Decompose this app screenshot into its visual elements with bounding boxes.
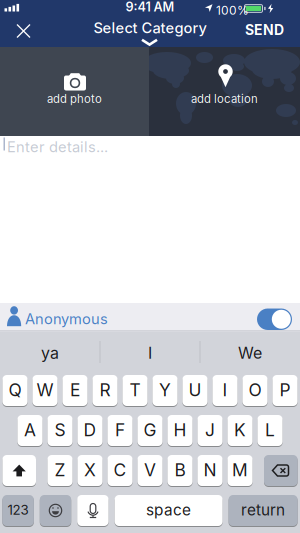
- staticText: add location: [191, 92, 258, 106]
- staticText: K: [234, 419, 246, 440]
- staticText: SEND: [245, 21, 284, 38]
- staticText: 100%: [216, 3, 249, 17]
- staticText: Enter details...: [7, 138, 108, 156]
- staticText: W: [36, 379, 53, 400]
- staticText: C: [113, 459, 126, 480]
- staticText: Q: [8, 379, 21, 400]
- staticText: Select Category: [93, 19, 206, 37]
- staticText: Z: [54, 459, 65, 480]
- staticText: return: [241, 501, 285, 519]
- staticText: D: [83, 419, 96, 440]
- staticText: add photo: [47, 92, 102, 106]
- staticText: T: [129, 379, 140, 400]
- staticText: I: [148, 343, 152, 363]
- staticText: B: [174, 459, 185, 480]
- staticText: space: [146, 501, 191, 519]
- staticText: I: [222, 379, 227, 400]
- staticText: N: [203, 459, 216, 480]
- staticText: V: [144, 459, 156, 480]
- staticText: 9:41 AM: [125, 0, 174, 15]
- staticText: We: [238, 343, 262, 363]
- staticText: ya: [41, 343, 59, 363]
- staticText: M: [232, 459, 248, 480]
- staticText: 123: [8, 502, 29, 518]
- staticText: E: [70, 379, 80, 400]
- staticText: F: [115, 419, 125, 440]
- staticText: R: [99, 379, 110, 400]
- staticText: O: [248, 379, 261, 400]
- staticText: G: [143, 419, 156, 440]
- staticText: Anonymous: [25, 310, 108, 328]
- staticText: S: [54, 419, 65, 440]
- staticText: X: [84, 459, 96, 480]
- staticText: Y: [159, 379, 171, 400]
- staticText: P: [279, 379, 290, 400]
- staticText: J: [205, 419, 215, 440]
- staticText: U: [188, 379, 201, 400]
- staticText: A: [24, 419, 36, 440]
- staticText: L: [265, 419, 275, 440]
- staticText: H: [173, 419, 186, 440]
